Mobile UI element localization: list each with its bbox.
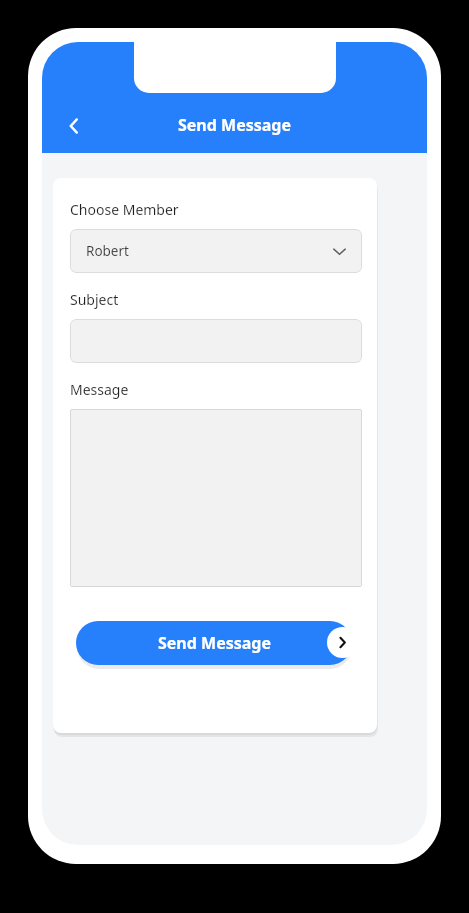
staticText: Choose Member xyxy=(70,200,179,219)
button[interactable]: Send Message xyxy=(70,619,362,666)
staticText: Subject xyxy=(70,290,119,309)
staticText: Message xyxy=(70,380,129,399)
button[interactable]: Message input xyxy=(70,409,362,587)
staticText: Send Message xyxy=(178,114,291,136)
button[interactable]: Subject input xyxy=(70,319,362,363)
button[interactable]: Back xyxy=(50,102,98,150)
button[interactable]: Robert xyxy=(70,229,362,273)
staticText: Robert xyxy=(86,242,129,260)
staticText: Send Message xyxy=(158,632,271,654)
